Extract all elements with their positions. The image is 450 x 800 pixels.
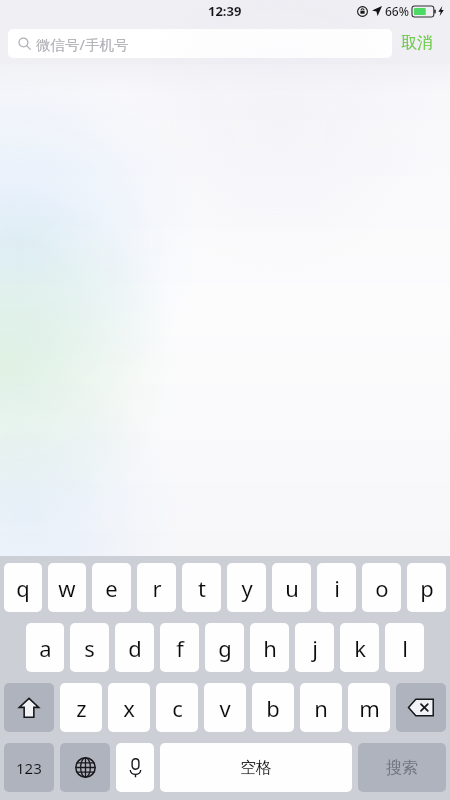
- button[interactable]: v: [204, 683, 246, 732]
- button[interactable]: j: [295, 623, 334, 672]
- button[interactable]: s: [70, 623, 109, 672]
- staticText: r: [152, 573, 162, 603]
- staticText: f: [176, 633, 184, 663]
- button[interactable]: e: [92, 563, 131, 612]
- staticText: q: [16, 573, 30, 603]
- button[interactable]: 空格: [160, 743, 352, 792]
- staticText: h: [263, 633, 277, 663]
- button[interactable]: r: [137, 563, 176, 612]
- staticText: 微信号/手机号: [36, 34, 129, 54]
- button[interactable]: k: [340, 623, 379, 672]
- staticText: j: [312, 633, 318, 663]
- button[interactable]: w: [48, 563, 86, 612]
- staticText: u: [285, 573, 299, 603]
- staticText: g: [218, 633, 232, 663]
- staticText: a: [39, 633, 52, 663]
- button[interactable]: b: [252, 683, 294, 732]
- button[interactable]: Search: [8, 29, 392, 58]
- staticText: d: [128, 633, 142, 663]
- staticText: b: [266, 693, 280, 723]
- button[interactable]: d: [115, 623, 154, 672]
- staticText: m: [359, 693, 380, 723]
- button[interactable]: x: [108, 683, 150, 732]
- other: Search: [18, 37, 31, 50]
- staticText: 123: [16, 758, 42, 778]
- button[interactable]: Delete: [396, 683, 446, 732]
- staticText: e: [105, 573, 118, 603]
- button[interactable]: Change keyboard: [60, 743, 110, 792]
- button[interactable]: z: [60, 683, 102, 732]
- button[interactable]: q: [4, 563, 42, 612]
- staticText: v: [219, 693, 231, 723]
- button[interactable]: n: [300, 683, 342, 732]
- staticText: 取消: [401, 33, 433, 53]
- button[interactable]: Voice input: [116, 743, 154, 792]
- button[interactable]: u: [272, 563, 311, 612]
- staticText: n: [314, 693, 328, 723]
- staticText: 空格: [240, 758, 272, 778]
- staticText: s: [84, 633, 95, 663]
- button[interactable]: 搜索: [358, 743, 446, 792]
- button[interactable]: o: [362, 563, 401, 612]
- button[interactable]: f: [160, 623, 199, 672]
- staticText: o: [375, 573, 389, 603]
- button[interactable]: g: [205, 623, 244, 672]
- staticText: i: [334, 573, 340, 603]
- button[interactable]: h: [250, 623, 289, 672]
- button[interactable]: c: [156, 683, 198, 732]
- button[interactable]: i: [317, 563, 356, 612]
- staticText: 12:39: [208, 2, 242, 20]
- staticText: t: [198, 573, 206, 603]
- staticText: 搜索: [386, 758, 418, 778]
- staticText: w: [58, 573, 76, 603]
- button[interactable]: 取消: [392, 29, 442, 57]
- staticText: z: [76, 693, 87, 723]
- staticText: l: [402, 633, 408, 663]
- staticText: y: [241, 573, 253, 603]
- staticText: 66%: [385, 3, 409, 19]
- button[interactable]: y: [227, 563, 266, 612]
- staticText: p: [420, 573, 434, 603]
- staticText: x: [123, 693, 135, 723]
- button[interactable]: l: [385, 623, 424, 672]
- button[interactable]: m: [348, 683, 390, 732]
- staticText: c: [172, 693, 183, 723]
- staticText: k: [354, 633, 366, 663]
- button[interactable]: Shift: [4, 683, 54, 732]
- button[interactable]: p: [407, 563, 446, 612]
- button[interactable]: a: [26, 623, 64, 672]
- button[interactable]: t: [182, 563, 221, 612]
- button[interactable]: 123: [4, 743, 54, 792]
